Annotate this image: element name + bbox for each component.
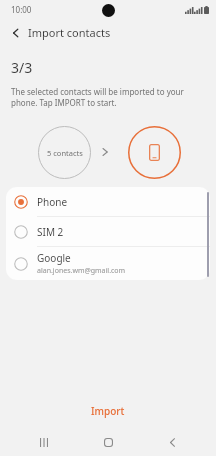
staticText: Import <box>91 404 125 418</box>
button[interactable]: Back <box>161 431 183 453</box>
button[interactable]: Phone <box>6 187 210 216</box>
staticText: Phone <box>37 195 68 209</box>
staticText: alan.jones.wm@gmail.com <box>37 266 126 276</box>
staticText: The selected contacts will be imported t… <box>11 86 184 108</box>
staticText: Import contacts <box>28 25 111 40</box>
button[interactable]: SIM 2 <box>6 217 210 246</box>
staticText: 10:00 <box>11 4 32 15</box>
staticText: 5 contacts <box>47 148 83 158</box>
staticText: SIM 2 <box>37 225 64 239</box>
button[interactable]: Back <box>7 24 25 42</box>
button[interactable]: Import <box>0 394 216 428</box>
staticText: 3/3 <box>11 58 33 77</box>
button[interactable]: Google <box>6 247 210 280</box>
button[interactable]: Home <box>97 431 119 453</box>
staticText: Google <box>37 251 71 265</box>
button[interactable]: Recents <box>33 431 55 453</box>
